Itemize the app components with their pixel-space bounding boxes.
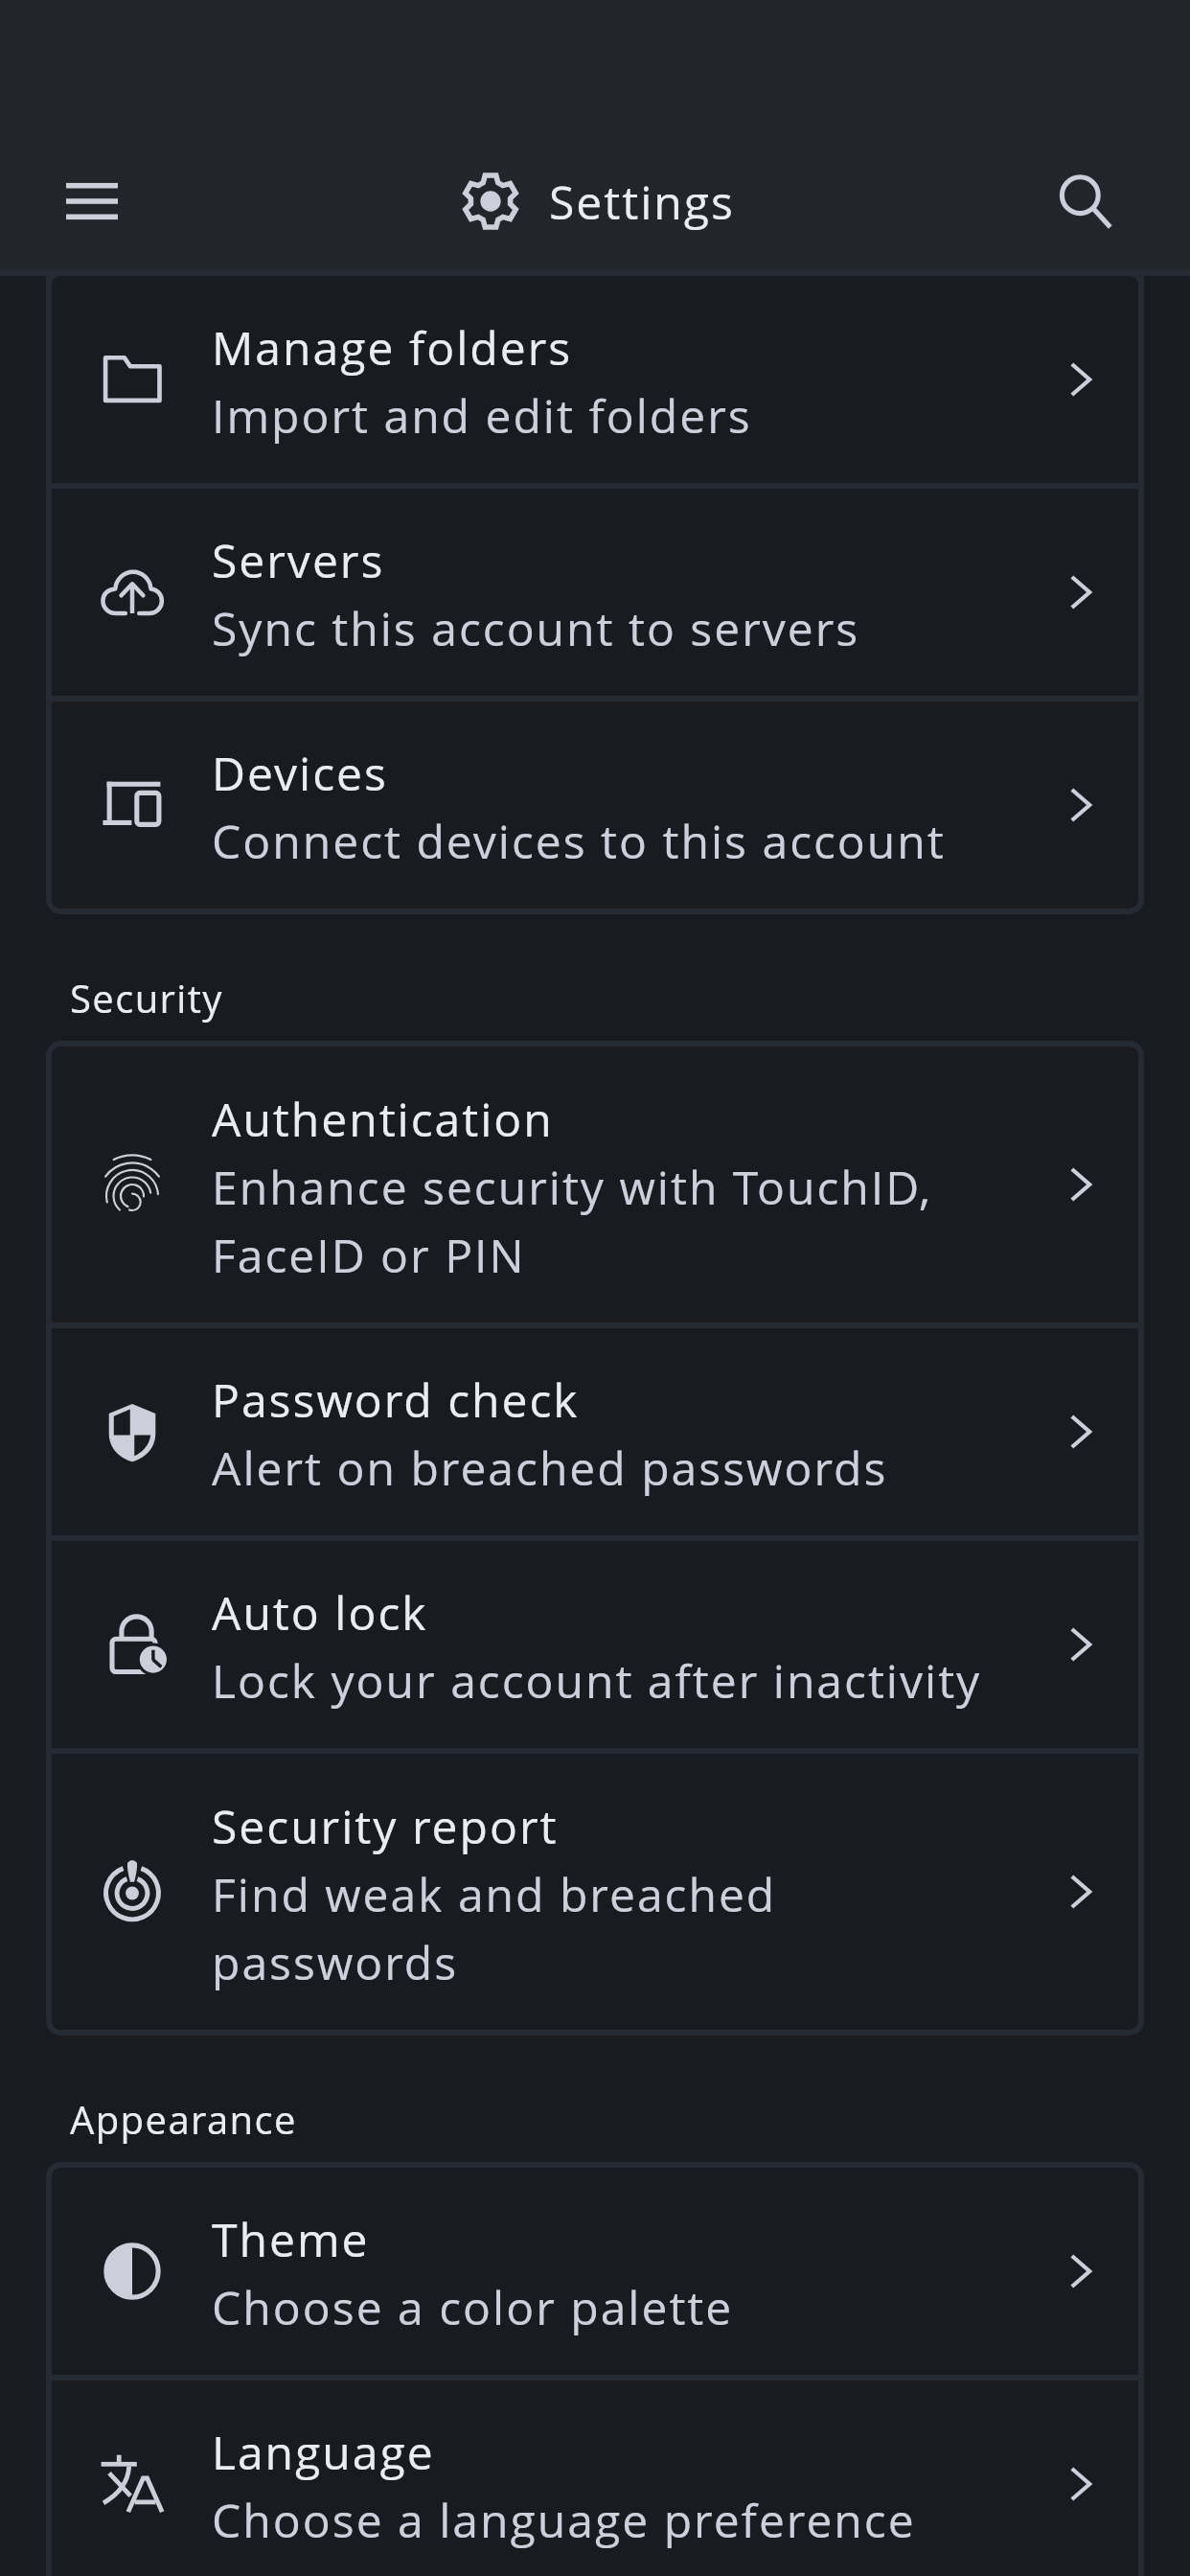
button[interactable]: Open navigation menu [57, 167, 126, 236]
staticText: Settings [549, 171, 735, 233]
staticText: Authentication [212, 1083, 554, 1151]
staticText: Manage folders [212, 311, 573, 379]
button[interactable]: Security report [52, 1754, 1138, 2030]
button[interactable]: Servers [52, 489, 1138, 696]
button[interactable]: Password check [52, 1328, 1138, 1535]
staticText: Enhance security with TouchID, [212, 1151, 933, 1219]
button[interactable]: Authentication [52, 1046, 1138, 1322]
staticText: Theme [212, 2203, 370, 2271]
staticText: Security [70, 973, 223, 1024]
staticText: Choose a color palette [212, 2271, 734, 2339]
staticText: Connect devices to this account [212, 805, 946, 873]
button[interactable]: Manage folders [52, 276, 1138, 483]
staticText: FaceID or PIN [212, 1219, 526, 1287]
staticText: Sync this account to servers [212, 592, 860, 660]
staticText: Password check [212, 1364, 580, 1432]
staticText: Lock your account after inactivity [212, 1644, 982, 1713]
staticText: Import and edit folders [212, 379, 752, 448]
staticText: Alert on breached passwords [212, 1432, 888, 1500]
staticText: Find weak and breached [212, 1858, 777, 1926]
button[interactable]: Language [52, 2380, 1138, 2576]
button[interactable]: Theme [52, 2168, 1138, 2375]
button[interactable]: Auto lock [52, 1541, 1138, 1748]
staticText: Servers [212, 524, 385, 592]
staticText: Auto lock [212, 1576, 428, 1644]
staticText: Language [212, 2416, 435, 2484]
staticText: Security report [212, 1790, 559, 1858]
staticText: Devices [212, 737, 388, 805]
button[interactable]: Devices [52, 701, 1138, 908]
button[interactable]: Search [1051, 167, 1120, 236]
staticText: Appearance [70, 2094, 297, 2146]
staticText: Choose a language preference [212, 2484, 916, 2552]
staticText: passwords [212, 1926, 459, 1994]
